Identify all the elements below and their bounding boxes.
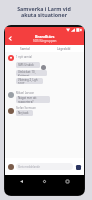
button[interactable]: Skriv meddelande [16,163,73,170]
staticText: Viktning 2, Lgh 1007 [18,78,43,84]
staticText: Samtal [20,47,30,51]
button[interactable]: Recents [63,177,72,186]
staticText: Stefan Svensson [16,106,36,110]
button[interactable]: Viktning 2, Lgh 1007 [16,78,43,84]
staticText: Något mer att rapportera? [18,96,50,103]
staticText: SOS Kårgruppen [33,39,57,43]
button[interactable]: Samtal [5,45,44,52]
button[interactable]: Back [17,177,26,186]
staticText: Brandkårs [35,34,55,39]
button[interactable]: Något mer att rapportera? [16,96,50,103]
staticText: Utskickat: 10, Kvitterat [18,70,47,76]
button[interactable]: Back [6,34,15,43]
staticText: Samverka i Larm vid akuta situationer [17,5,71,18]
button[interactable]: Camera [75,164,81,170]
button[interactable]: Home [40,177,49,186]
button[interactable]: Nej tack [16,110,33,116]
button[interactable]: Lägesbild [44,45,84,52]
staticText: 1 nytt samtal [16,55,32,59]
staticText: Lägesbild [57,47,71,51]
staticText: Skriv meddelande [18,165,40,169]
staticText: Nej tack [18,111,29,115]
button[interactable]: Utskickat: 10, Kvitterat [16,70,47,76]
button[interactable]: SMS Utskick [16,62,40,68]
staticText: Mikael Larsson [16,91,35,95]
staticText: SMS Utskick [18,63,34,67]
